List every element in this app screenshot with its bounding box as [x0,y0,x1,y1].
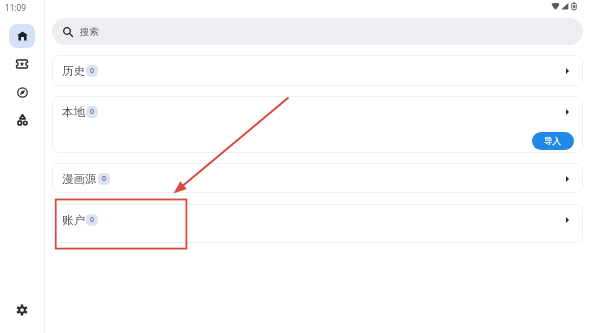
button[interactable]: 账户 [52,204,583,243]
staticText: 导入 [544,136,562,147]
staticText: 漫画源 [62,172,97,186]
staticText: 0 [102,174,107,184]
staticText: 0 [90,66,95,76]
staticText: 11:09 [5,2,26,13]
button[interactable]: 漫画源 [52,163,583,193]
staticText: 本地 [62,105,85,119]
staticText: 0 [90,107,95,117]
button[interactable]: 本地 [52,96,583,153]
button[interactable]: 搜索 [52,18,583,45]
button[interactable]: 历史 [52,55,583,86]
button[interactable]: Settings [8,296,36,324]
staticText: 历史 [62,64,85,78]
button[interactable]: Explore [8,78,36,106]
button[interactable]: Home [9,24,35,48]
button[interactable]: Categories [8,106,36,134]
staticText: 0 [90,215,95,225]
staticText: 账户 [62,213,85,227]
button[interactable]: 导入 [532,132,574,150]
button[interactable]: Library [8,50,36,78]
staticText: 搜索 [80,26,99,38]
